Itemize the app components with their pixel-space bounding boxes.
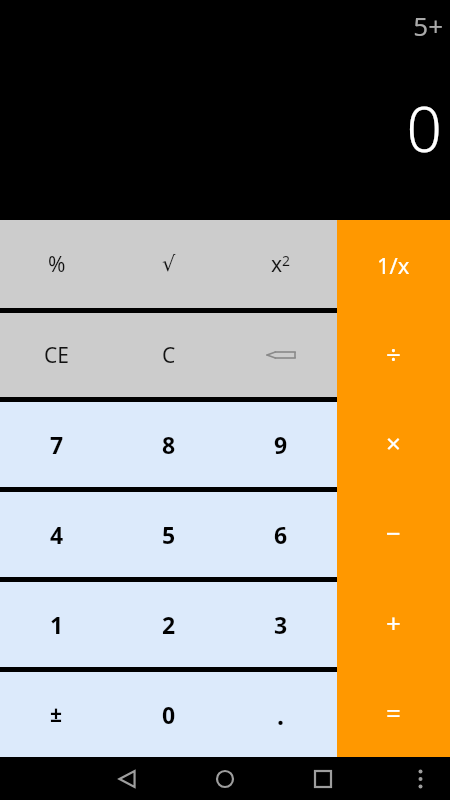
staticText: 1/x bbox=[377, 250, 410, 280]
button[interactable]: More options bbox=[400, 759, 440, 799]
staticText: − bbox=[386, 515, 401, 550]
button[interactable]: 2 bbox=[113, 582, 225, 667]
button[interactable]: √ bbox=[113, 220, 225, 308]
staticText: 0 bbox=[406, 86, 442, 170]
staticText: 5 bbox=[162, 519, 176, 550]
staticText: . bbox=[277, 698, 285, 732]
staticText: × bbox=[386, 425, 401, 460]
button[interactable]: . bbox=[225, 672, 337, 757]
staticText: x2 bbox=[271, 250, 291, 279]
staticText: 8 bbox=[162, 429, 176, 460]
staticText: 0 bbox=[162, 699, 176, 730]
staticText: 4 bbox=[50, 519, 64, 550]
staticText: ÷ bbox=[386, 336, 401, 371]
button[interactable]: Divide bbox=[337, 309, 450, 398]
button[interactable]: 8 bbox=[113, 402, 225, 487]
button[interactable]: 5 bbox=[113, 492, 225, 577]
button[interactable]: 7 bbox=[0, 402, 113, 487]
button[interactable]: ± bbox=[0, 672, 113, 757]
button[interactable]: 1 bbox=[0, 582, 113, 667]
button[interactable]: Plus bbox=[337, 577, 450, 667]
button[interactable]: Multiply bbox=[337, 398, 450, 487]
staticText: 2 bbox=[162, 609, 176, 640]
button[interactable]: % bbox=[0, 220, 113, 308]
staticText: 5+ bbox=[413, 8, 443, 43]
staticText: = bbox=[386, 695, 401, 730]
button[interactable]: Equals bbox=[337, 667, 450, 757]
button[interactable]: Recent apps bbox=[301, 757, 345, 800]
button[interactable]: Backspace bbox=[225, 313, 337, 397]
button[interactable]: C bbox=[113, 313, 225, 397]
button[interactable]: 6 bbox=[225, 492, 337, 577]
staticText: 1 bbox=[50, 609, 64, 640]
staticText: % bbox=[48, 250, 66, 279]
button[interactable]: CE bbox=[0, 313, 113, 397]
button[interactable]: Minus bbox=[337, 487, 450, 577]
button[interactable]: 3 bbox=[225, 582, 337, 667]
button[interactable]: Back bbox=[105, 757, 149, 800]
button[interactable]: 9 bbox=[225, 402, 337, 487]
button[interactable]: x2 bbox=[225, 220, 337, 308]
staticText: 7 bbox=[50, 429, 64, 460]
staticText: √ bbox=[162, 252, 176, 276]
staticText: C bbox=[162, 341, 176, 370]
button[interactable]: 4 bbox=[0, 492, 113, 577]
staticText: ± bbox=[50, 700, 63, 729]
staticText: 6 bbox=[274, 519, 288, 550]
button[interactable]: Reciprocal bbox=[337, 220, 450, 309]
button[interactable]: 0 bbox=[113, 672, 225, 757]
staticText: CE bbox=[44, 341, 69, 370]
staticText: 3 bbox=[274, 609, 288, 640]
staticText: 9 bbox=[274, 429, 288, 460]
button[interactable]: Home bbox=[203, 757, 247, 800]
staticText: + bbox=[386, 605, 401, 640]
